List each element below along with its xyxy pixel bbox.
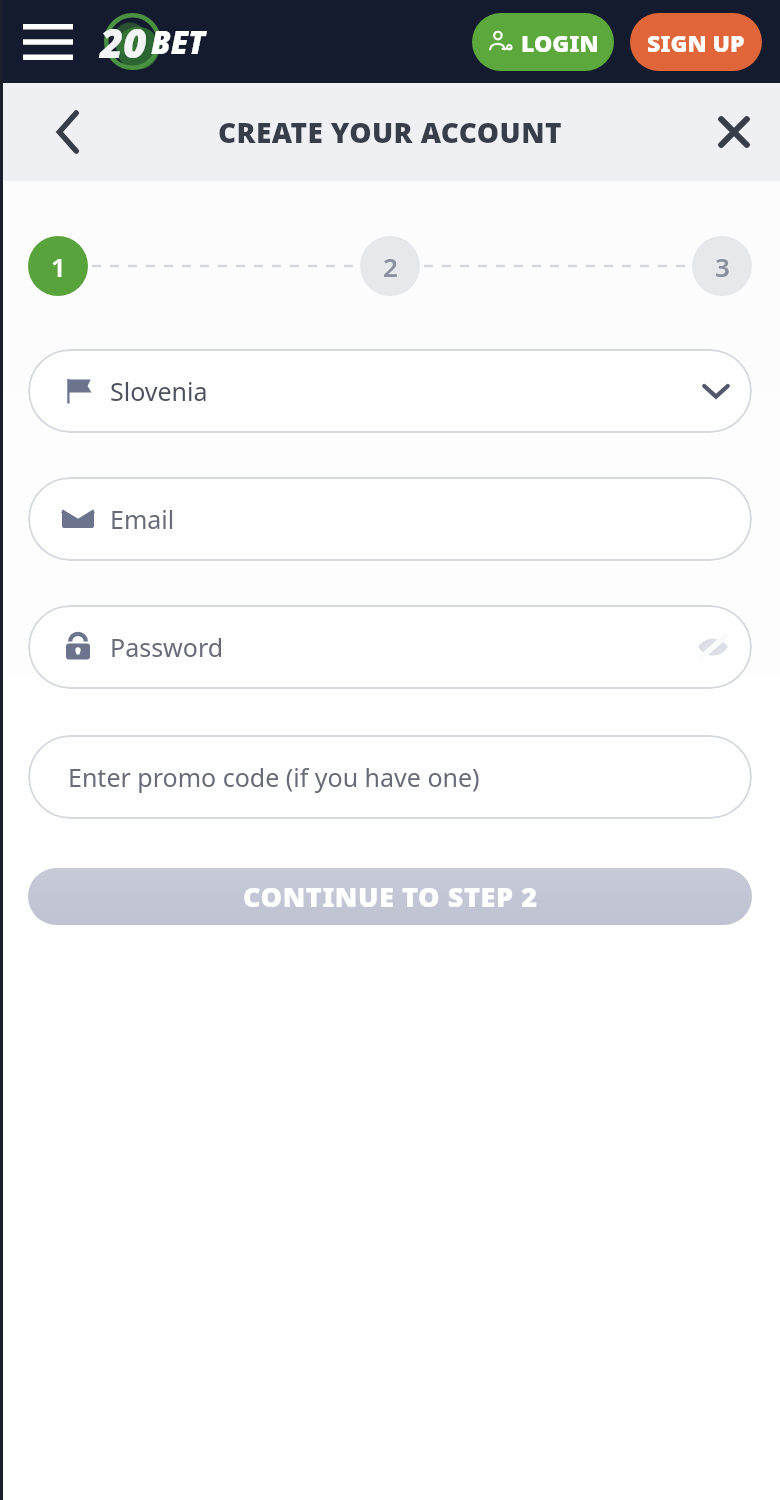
staticText: SIGN UP: [647, 27, 745, 58]
button[interactable]: Menu: [14, 12, 82, 72]
button[interactable]: Back: [14, 83, 123, 181]
staticText: CONTINUE TO STEP 2: [243, 878, 538, 915]
button[interactable]: Slovenia: [28, 349, 752, 433]
button[interactable]: CONTINUE TO STEP 2: [28, 868, 752, 925]
staticText: 3: [715, 249, 730, 284]
button[interactable]: Close: [688, 83, 780, 181]
button[interactable]: LOGIN: [472, 13, 614, 71]
staticText: 2: [383, 249, 398, 284]
button[interactable]: 2: [360, 236, 420, 296]
button[interactable]: 3: [692, 236, 752, 296]
button[interactable]: SIGN UP: [630, 13, 762, 71]
staticText: 20: [100, 15, 147, 69]
staticText: Slovenia: [110, 374, 702, 408]
staticText: LOGIN: [521, 27, 599, 58]
staticText: Email: [110, 502, 730, 536]
button[interactable]: Password: [28, 605, 752, 689]
staticText: Enter promo code (if you have one): [68, 760, 730, 794]
button[interactable]: Enter promo code (if you have one): [28, 735, 752, 819]
button[interactable]: 1: [28, 236, 88, 296]
button[interactable]: Email: [28, 477, 752, 561]
staticText: 1: [51, 249, 66, 284]
staticText: CREATE YOUR ACCOUNT: [218, 113, 562, 151]
staticText: Password: [110, 630, 696, 664]
staticText: BET: [151, 21, 206, 63]
